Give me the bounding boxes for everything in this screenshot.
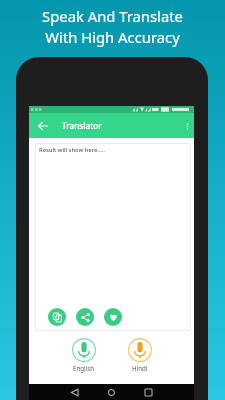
button[interactable]: Back — [31, 114, 54, 137]
staticText: Speak And Translate — [42, 6, 183, 26]
staticText: English — [73, 364, 95, 372]
button[interactable]: Home — [93, 384, 130, 400]
staticText: Translator — [62, 120, 102, 131]
button[interactable]: Back — [56, 384, 93, 400]
button[interactable]: Favorite — [104, 308, 122, 326]
button[interactable]: Hindi — [128, 338, 152, 372]
button[interactable]: Copy — [48, 308, 66, 326]
button[interactable]: Recents — [130, 384, 167, 400]
button[interactable]: English — [72, 338, 96, 372]
button[interactable]: More options — [177, 116, 197, 136]
button[interactable]: Share — [76, 308, 94, 326]
staticText: With High Accuracy — [45, 27, 180, 47]
staticText: Hindi — [132, 364, 148, 372]
staticText: Result will show here..... — [39, 146, 106, 154]
